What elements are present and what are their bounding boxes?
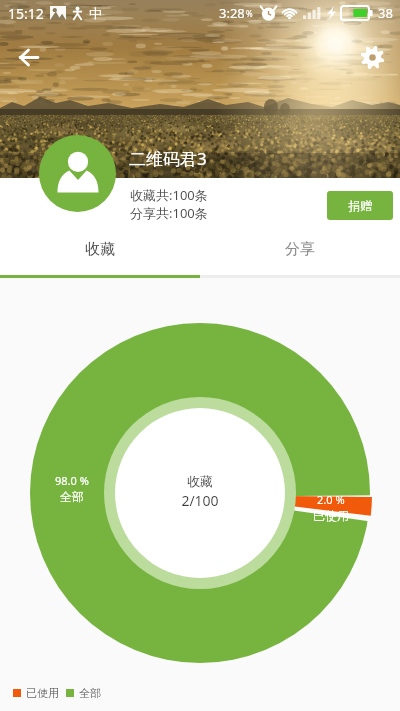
staticText: 2/100 [181,491,219,510]
staticText: 全部 [60,489,84,504]
staticText: 收藏共:100条 [130,186,208,204]
staticText: % [246,8,253,19]
staticText: 收藏 [187,473,213,489]
button[interactable]: Back [0,29,56,85]
staticText: 二维码君3 [129,147,207,170]
staticText: 2.0 % [317,492,345,507]
staticText: 捐赠 [348,198,372,213]
staticText: 中 [89,5,102,21]
staticText: 全部 [79,686,101,700]
button[interactable]: 分享 [200,224,400,275]
button[interactable]: Profile avatar [39,135,116,212]
staticText: 已使用 [26,686,59,700]
staticText: 已使用 [313,508,349,523]
button[interactable]: Settings [344,29,400,85]
button[interactable]: 捐赠 [327,191,393,220]
staticText: 分享 [285,240,315,259]
button[interactable]: 收藏 [0,224,200,275]
staticText: 收藏 [85,240,115,259]
staticText: 98.0 % [55,473,89,488]
staticText: 38 [378,4,393,22]
staticText: 分享共:100条 [130,204,208,222]
staticText: 15:12 [8,4,44,23]
staticText: 3:28 [219,4,245,22]
